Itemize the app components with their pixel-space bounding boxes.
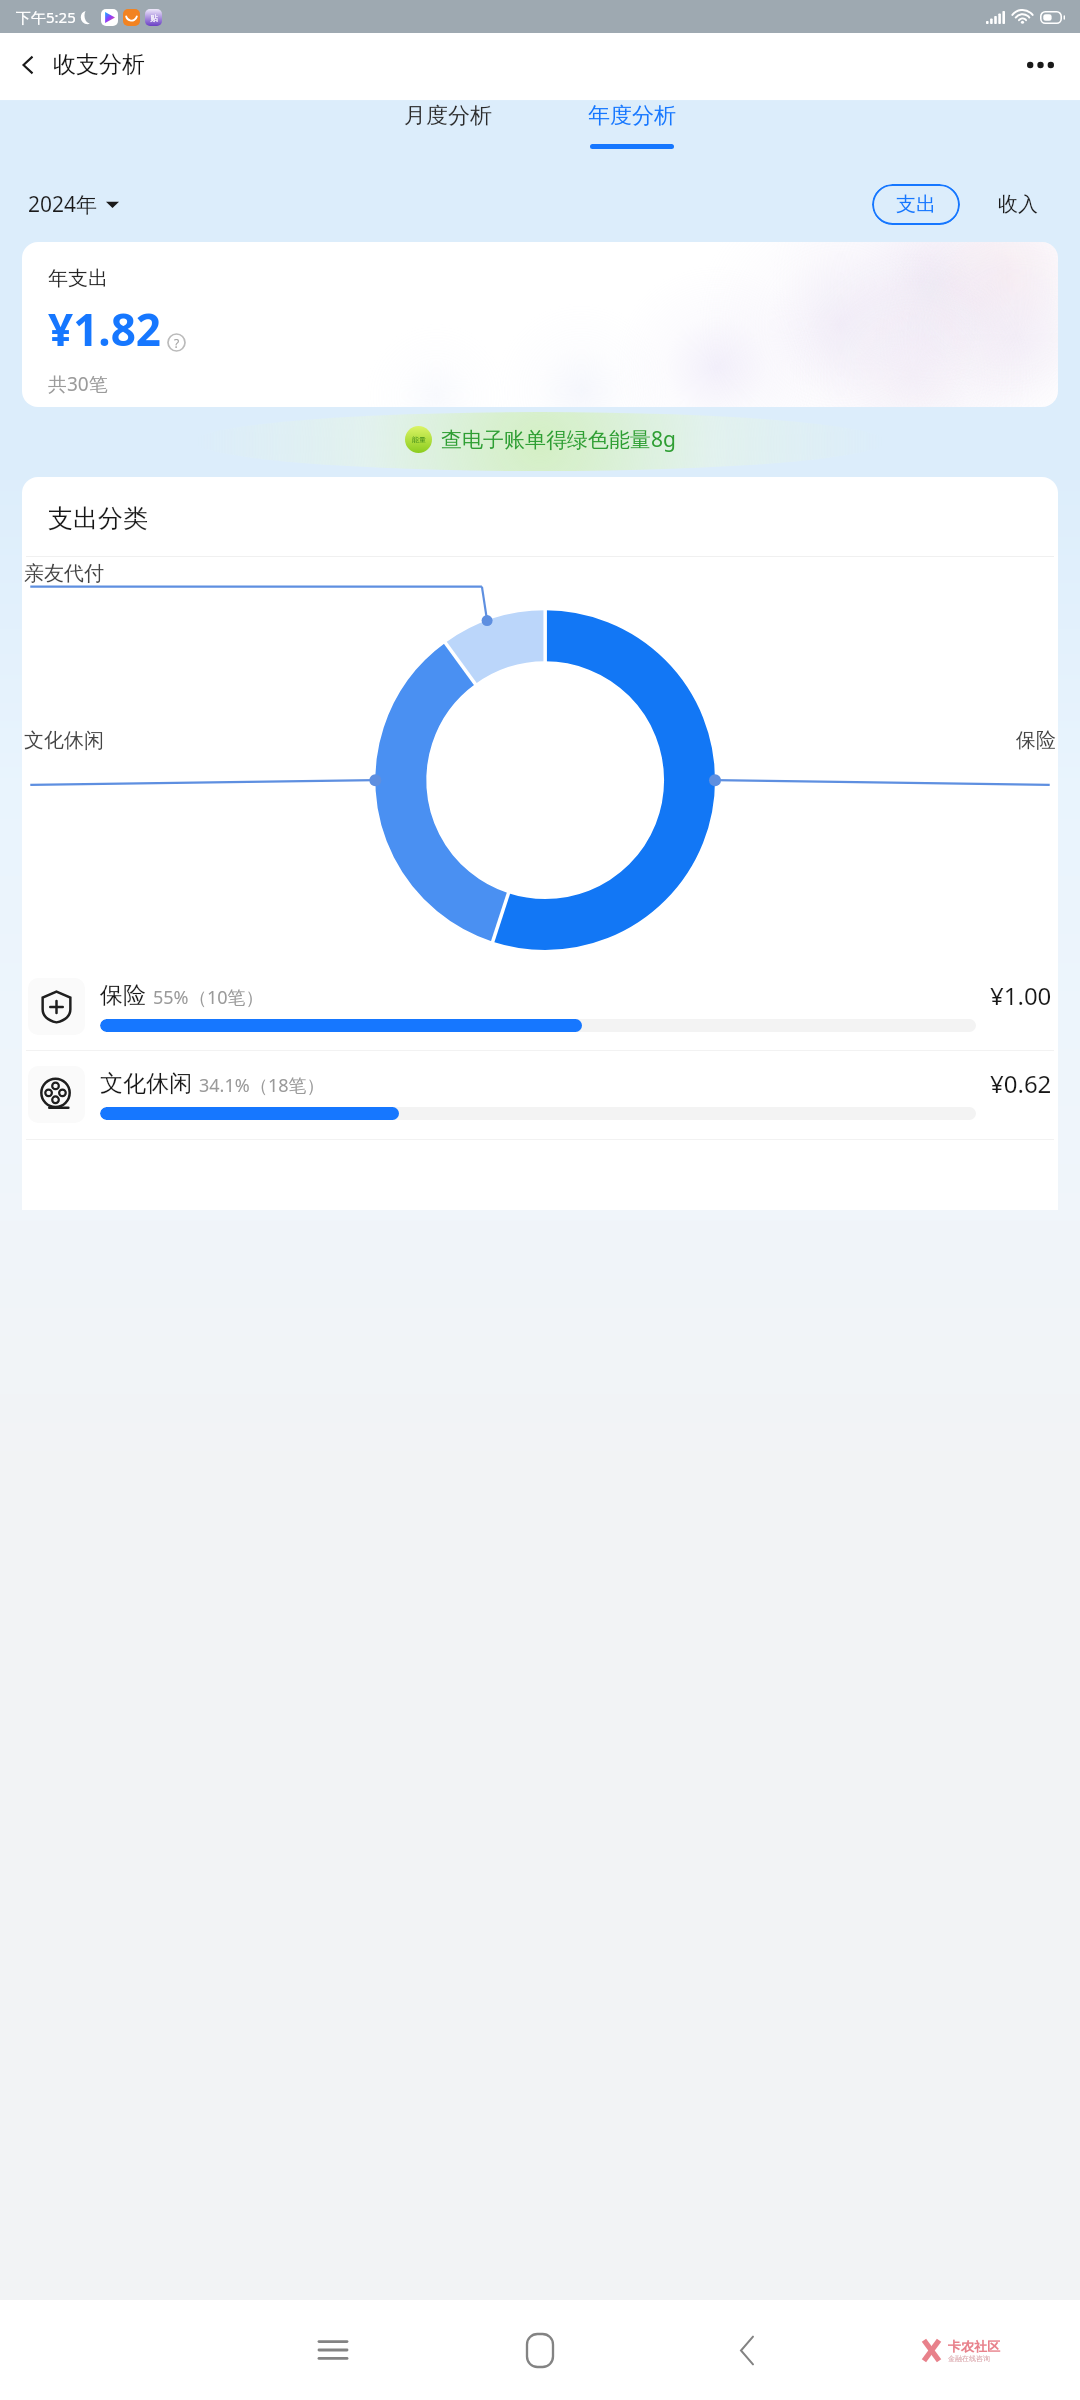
button[interactable]: 保险 xyxy=(22,978,1058,1035)
button[interactable]: Home xyxy=(436,2300,643,2400)
button[interactable]: 年支出 xyxy=(22,242,1058,407)
staticText: 共30笔 xyxy=(48,371,108,397)
staticText: 金融在线咨询 xyxy=(948,2354,990,2363)
staticText: 年度分析 xyxy=(588,102,676,130)
button[interactable]: Back xyxy=(643,2300,850,2400)
staticText: （18笔） xyxy=(250,1073,325,1098)
button[interactable]: Back xyxy=(10,42,153,87)
button[interactable]: Help xyxy=(167,333,186,352)
button[interactable]: 支出 xyxy=(872,184,960,225)
button[interactable]: More options xyxy=(1017,51,1064,79)
staticText: 支出分类 xyxy=(48,503,148,534)
staticText: ¥1.82 xyxy=(48,299,162,359)
staticText: 贴 xyxy=(150,13,158,23)
staticText: 年支出 xyxy=(48,266,108,291)
staticText: 文化休闲 xyxy=(100,1069,192,1098)
staticText: 34.1% xyxy=(199,1073,250,1098)
staticText: 2024年 xyxy=(28,190,98,219)
staticText: 文化休闲 xyxy=(24,728,104,753)
staticText: 查电子账单得绿色能量8g xyxy=(441,425,676,454)
button[interactable]: 收入 xyxy=(986,184,1050,225)
staticText: 保险 xyxy=(100,981,146,1010)
button[interactable]: 年度分析 xyxy=(540,96,724,164)
staticText: 亲友代付 xyxy=(24,561,104,586)
staticText: 保险 xyxy=(1016,728,1056,753)
staticText: 支出 xyxy=(896,192,936,217)
button[interactable]: 能量 xyxy=(0,407,1080,471)
staticText: 55% xyxy=(153,985,189,1010)
other: Back xyxy=(18,54,40,76)
staticText: 月度分析 xyxy=(404,102,492,130)
button[interactable]: Recents xyxy=(229,2300,436,2400)
staticText: ¥1.00 xyxy=(990,979,1052,1012)
staticText: （10笔） xyxy=(189,985,264,1010)
button[interactable]: 2024年 xyxy=(20,185,127,224)
staticText: 卡农社区 xyxy=(948,2338,1000,2354)
staticText: 收入 xyxy=(998,192,1038,217)
button[interactable]: 月度分析 xyxy=(356,96,540,164)
staticText: ¥0.62 xyxy=(990,1067,1052,1100)
staticText: 能量 xyxy=(412,435,426,444)
button[interactable]: 文化休闲 xyxy=(22,1066,1058,1123)
staticText: 下午5:25 xyxy=(16,7,76,27)
staticText: ? xyxy=(174,335,180,351)
staticText: 收支分析 xyxy=(53,50,145,79)
